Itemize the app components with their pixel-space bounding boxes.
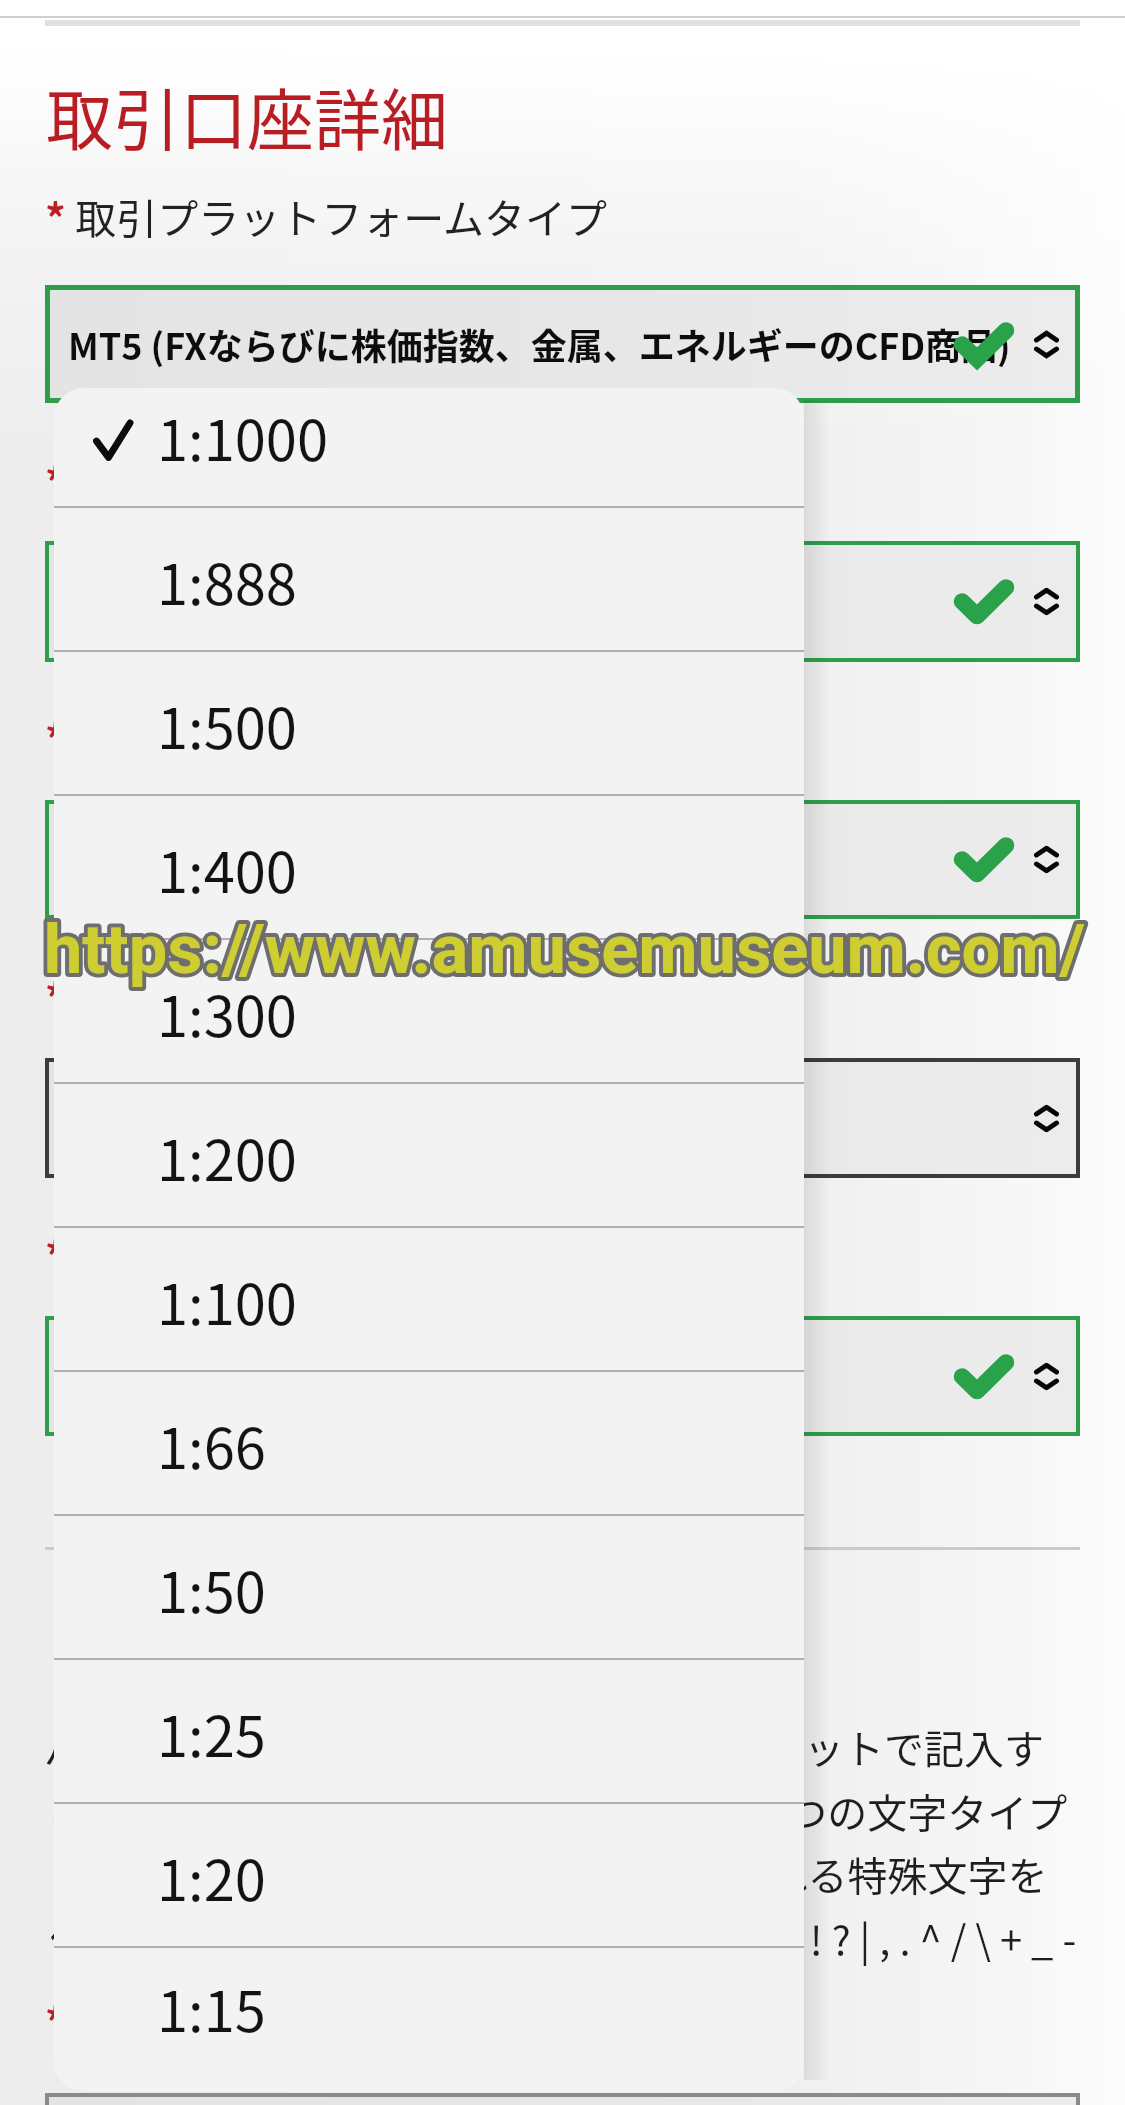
button[interactable]: Select field (45, 285, 1080, 403)
button[interactable]: Select field (45, 1058, 1080, 1178)
staticText: MT5 (FXならびに株価指数、金属、エネルギーのCFD商品) (68, 318, 1011, 370)
button[interactable]: Select field (45, 541, 1080, 662)
button[interactable]: 1:200 (54, 1084, 804, 1228)
button[interactable]: 1:20 (54, 1804, 804, 1948)
button[interactable]: 1:300 (54, 940, 804, 1084)
staticText: 取引口座パスワード (66, 966, 445, 1025)
staticText: パスワードは半角英数字と記号を含んだセットで記入す (44, 1718, 1044, 1776)
staticText: 1:25 (157, 1692, 266, 1773)
staticText: 生年月日 (66, 1990, 240, 2049)
staticText: * (45, 1990, 66, 2049)
button[interactable]: 1:400 (54, 796, 804, 940)
staticText: 取引プラットフォームタイプ (66, 186, 607, 245)
button[interactable]: 1:1000 (54, 388, 804, 508)
button[interactable]: 1:66 (54, 1372, 804, 1516)
staticText: 1:400 (157, 828, 297, 909)
staticText: https://www.amusemuseum.com/ (44, 909, 1086, 989)
staticText: https://www.amusemuseum.com/ (44, 909, 1086, 989)
staticText: 1:15 (157, 1967, 266, 2048)
staticText: 1:500 (157, 684, 297, 765)
staticText: 1:1000 (157, 396, 328, 477)
button[interactable]: 1:100 (54, 1228, 804, 1372)
button[interactable]: 1:50 (54, 1516, 804, 1660)
staticText: 1:50 (157, 1548, 266, 1629)
staticText: 確認用パスワード (66, 1224, 404, 1283)
button[interactable]: 1:888 (54, 508, 804, 652)
staticText: 1:66 (157, 1404, 266, 1485)
button[interactable]: Select field (45, 800, 1080, 919)
button[interactable]: Select field (45, 1316, 1080, 1436)
staticText: * (45, 707, 66, 766)
staticText: * (45, 966, 66, 1025)
button[interactable]: 1:25 (54, 1660, 804, 1804)
staticText: プを使用してください。またお使いになれる特殊文字を (50, 1845, 1048, 1903)
staticText: る必要があります。そのうち少なくとも3つの文字タイプ (49, 1782, 1068, 1840)
staticText: レバレッジ (66, 450, 281, 509)
staticText: 1:200 (157, 1116, 297, 1197)
button[interactable]: 1:500 (54, 652, 804, 796)
staticText: 1:100 (157, 1260, 297, 1341)
staticText: 1:20 (157, 1836, 266, 1917)
staticText: * (45, 450, 66, 509)
button[interactable]: 1:15 (54, 1948, 804, 2067)
button[interactable]: Date field (45, 2093, 1080, 2105)
staticText: 使用することができます。: @ # $ % & * ( ) ! ? | , . … (50, 1909, 1077, 1967)
staticText: * (45, 1224, 66, 1283)
staticText: 1:888 (157, 540, 297, 621)
staticText: 1:300 (157, 972, 297, 1053)
staticText: * (45, 186, 66, 245)
staticText: 口座通貨 (66, 707, 240, 766)
staticText: 取引口座詳細 (46, 67, 448, 164)
